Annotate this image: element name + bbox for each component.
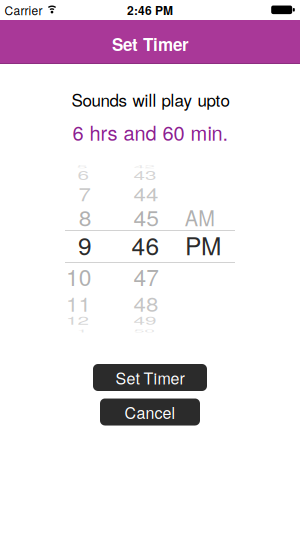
- staticText: 5: [79, 150, 92, 183]
- staticText: 1: [79, 314, 92, 347]
- staticText: 46: [131, 227, 159, 262]
- staticText: 42: [133, 150, 159, 183]
- staticText: 48: [133, 286, 159, 320]
- staticText: 12: [66, 303, 92, 337]
- staticText: AM: [182, 200, 218, 234]
- staticText: Carrier: [4, 1, 42, 19]
- staticText: 11: [66, 286, 92, 320]
- staticText: 45: [133, 200, 159, 234]
- staticText: 6 hrs and 60 min.: [72, 118, 228, 146]
- staticText: 50: [133, 314, 159, 347]
- button[interactable]: Cancel: [100, 398, 200, 425]
- staticText: Sounds will play upto: [71, 87, 229, 112]
- staticText: PM: [185, 227, 221, 262]
- staticText: 10: [66, 259, 92, 293]
- staticText: 47: [133, 259, 159, 293]
- staticText: 2:46 PM: [127, 1, 173, 19]
- staticText: 49: [133, 303, 159, 337]
- button[interactable]: Set Timer: [93, 364, 207, 391]
- staticText: 44: [133, 176, 159, 210]
- staticText: 6: [79, 158, 92, 191]
- staticText: 43: [133, 158, 159, 191]
- staticText: 9: [78, 227, 92, 262]
- staticText: Set Timer: [112, 32, 189, 56]
- staticText: 7: [79, 176, 92, 210]
- staticText: Cancel: [124, 400, 175, 423]
- staticText: 8: [79, 200, 92, 234]
- staticText: Set Timer: [115, 366, 184, 389]
